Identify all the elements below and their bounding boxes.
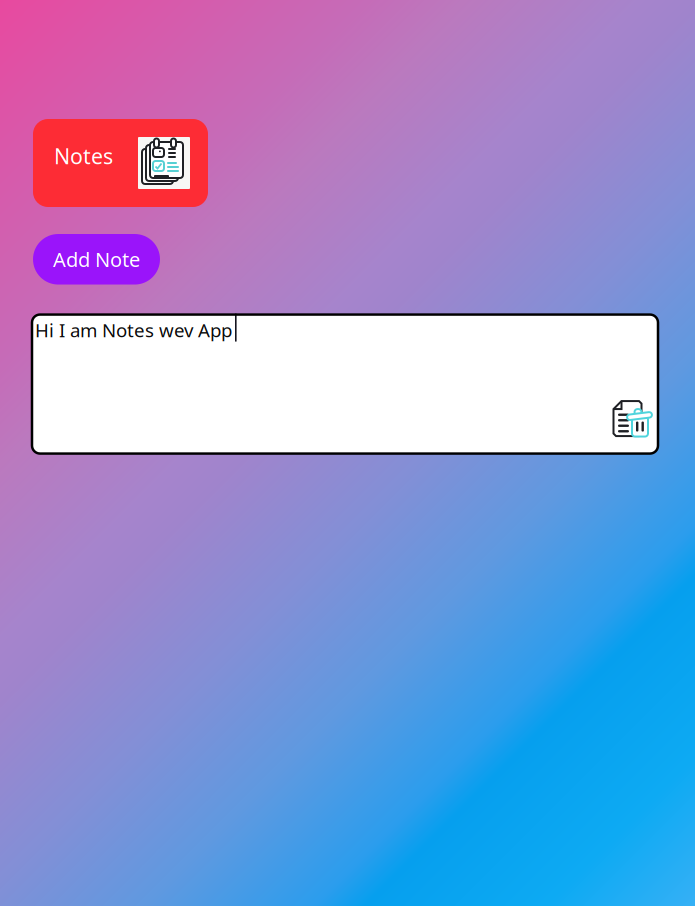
staticText: Hi I am Notes wev App <box>35 318 232 342</box>
button[interactable]: Delete note <box>612 400 650 440</box>
button[interactable]: Notes <box>33 119 208 207</box>
button[interactable]: Add Note <box>33 234 160 285</box>
staticText: Notes <box>54 142 113 170</box>
button[interactable]: Hi I am Notes wev App <box>32 315 658 454</box>
staticText: Add Note <box>53 246 140 273</box>
